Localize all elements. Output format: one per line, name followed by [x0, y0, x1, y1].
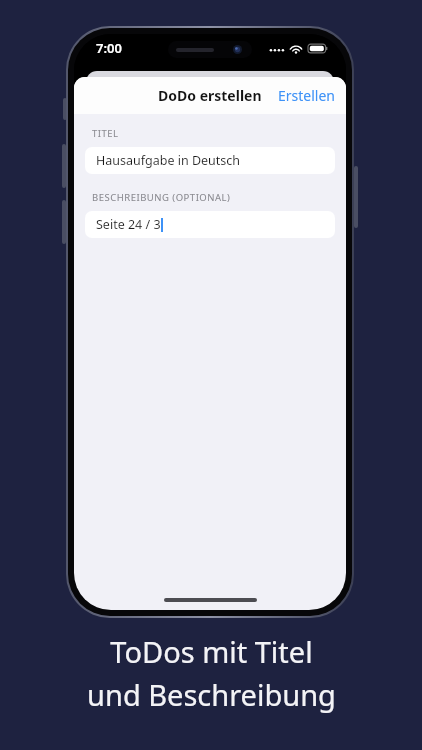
button[interactable]: Erstellen [267, 78, 346, 113]
button[interactable]: Seite 24 / 3 [85, 211, 335, 238]
staticText: Erstellen [278, 86, 335, 105]
staticText: DoDo erstellen [158, 86, 262, 105]
staticText: und Beschreibung [87, 675, 336, 714]
staticText: BESCHREIBUNG (OPTIONAL) [92, 191, 231, 204]
staticText: TITEL [92, 127, 119, 140]
staticText: Hausaufgabe in Deutsch [96, 152, 241, 169]
staticText: Seite 24 / 3 [96, 216, 161, 233]
staticText: ToDos mit Titel [110, 632, 313, 671]
button[interactable]: Hausaufgabe in Deutsch [85, 147, 335, 174]
staticText: 7:00 [96, 39, 122, 57]
